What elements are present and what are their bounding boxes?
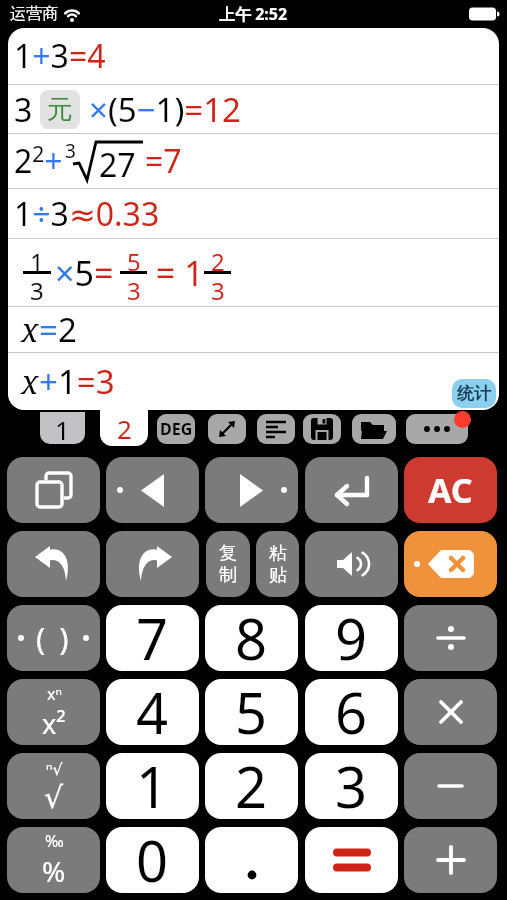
staticText: 运营商 (10, 4, 58, 24)
staticText: 5 (235, 679, 268, 740)
button[interactable]: 1 (106, 753, 199, 819)
button[interactable]: 复 制 (206, 531, 250, 597)
button[interactable] (257, 414, 295, 444)
button[interactable] (7, 531, 100, 597)
button[interactable]: ( ) (7, 605, 100, 671)
button[interactable] (305, 827, 398, 893)
button[interactable]: ‰ (7, 827, 100, 893)
staticText: 3 (335, 753, 368, 814)
button[interactable]: AC (404, 457, 497, 523)
staticText: 1÷3≈0.33 (14, 192, 160, 236)
staticText: ⁿ√ (46, 758, 63, 780)
staticText: 9 (335, 605, 368, 666)
button[interactable]: 2 (205, 753, 298, 819)
staticText: 2 (235, 753, 268, 814)
button[interactable]: 3 (305, 753, 398, 819)
button[interactable] (305, 457, 398, 523)
staticText: 1 (30, 245, 44, 271)
staticText: 6 (335, 679, 368, 740)
staticText: 元 (47, 93, 73, 126)
button[interactable]: 粘 贴 (256, 531, 299, 597)
button[interactable]: 0 (106, 827, 199, 893)
staticText: xⁿ (47, 683, 62, 705)
button[interactable]: ⁿ√ (7, 753, 100, 819)
staticText: 2 (117, 411, 132, 446)
staticText: 3 (14, 88, 33, 132)
button[interactable] (404, 605, 497, 671)
button[interactable]: 6 (305, 679, 398, 745)
staticText: =2 (39, 307, 77, 352)
button[interactable]: 4 (106, 679, 199, 745)
staticText: 8 (235, 605, 268, 666)
button[interactable]: 9 (305, 605, 398, 671)
button[interactable]: DEG (157, 414, 195, 444)
staticText: 统计 (457, 383, 491, 404)
button[interactable] (404, 753, 497, 819)
button[interactable] (352, 414, 396, 444)
staticText: ‰ (45, 830, 64, 852)
button[interactable] (404, 827, 497, 893)
staticText: 4 (136, 679, 169, 740)
staticText: 5 (127, 245, 141, 271)
staticText: 复 制 (219, 542, 237, 587)
staticText: 3 (30, 274, 44, 300)
staticText: +1=3 (39, 359, 115, 404)
staticText: 1 (55, 412, 70, 444)
staticText: ×5= (55, 250, 114, 296)
button[interactable] (106, 531, 199, 597)
staticText: 7 (136, 605, 169, 666)
button[interactable] (205, 457, 298, 523)
button[interactable] (305, 531, 398, 597)
staticText: DEG (160, 418, 193, 440)
button[interactable] (303, 414, 341, 444)
staticText: 粘 贴 (269, 542, 287, 587)
staticText: 27 (99, 143, 136, 187)
staticText: =7 (145, 139, 182, 183)
staticText: 2 (211, 245, 225, 271)
staticText: 上午 2:52 (219, 3, 288, 25)
button[interactable]: 5 (205, 679, 298, 745)
staticText: ×(5−1)=12 (89, 87, 241, 132)
button[interactable] (106, 457, 199, 523)
staticText: 3 (65, 138, 76, 164)
button[interactable]: 2 (100, 410, 148, 446)
button[interactable] (404, 531, 497, 597)
button[interactable]: 1 (40, 412, 85, 444)
staticText: √ (44, 780, 64, 815)
staticText: x (21, 360, 39, 404)
staticText: x² (42, 705, 66, 742)
staticText: 22+ (14, 139, 63, 183)
button[interactable]: 统计 (452, 379, 496, 408)
staticText: % (42, 852, 66, 890)
staticText: x (21, 308, 39, 352)
button[interactable] (205, 827, 298, 893)
staticText: 0 (136, 827, 169, 888)
staticText: 1 (136, 753, 169, 814)
button[interactable]: 7 (106, 605, 199, 671)
staticText: AC (428, 467, 473, 513)
staticText: 3 (127, 274, 141, 300)
staticText: 1+3=4 (14, 34, 106, 78)
staticText: ( ) (36, 617, 72, 659)
button[interactable] (406, 414, 468, 444)
button[interactable]: xⁿ (7, 679, 100, 745)
staticText: 3 (211, 274, 225, 300)
button[interactable]: 8 (205, 605, 298, 671)
button[interactable] (208, 414, 246, 444)
button[interactable] (404, 679, 497, 745)
staticText: = 1 (147, 250, 204, 296)
button[interactable] (7, 457, 100, 523)
